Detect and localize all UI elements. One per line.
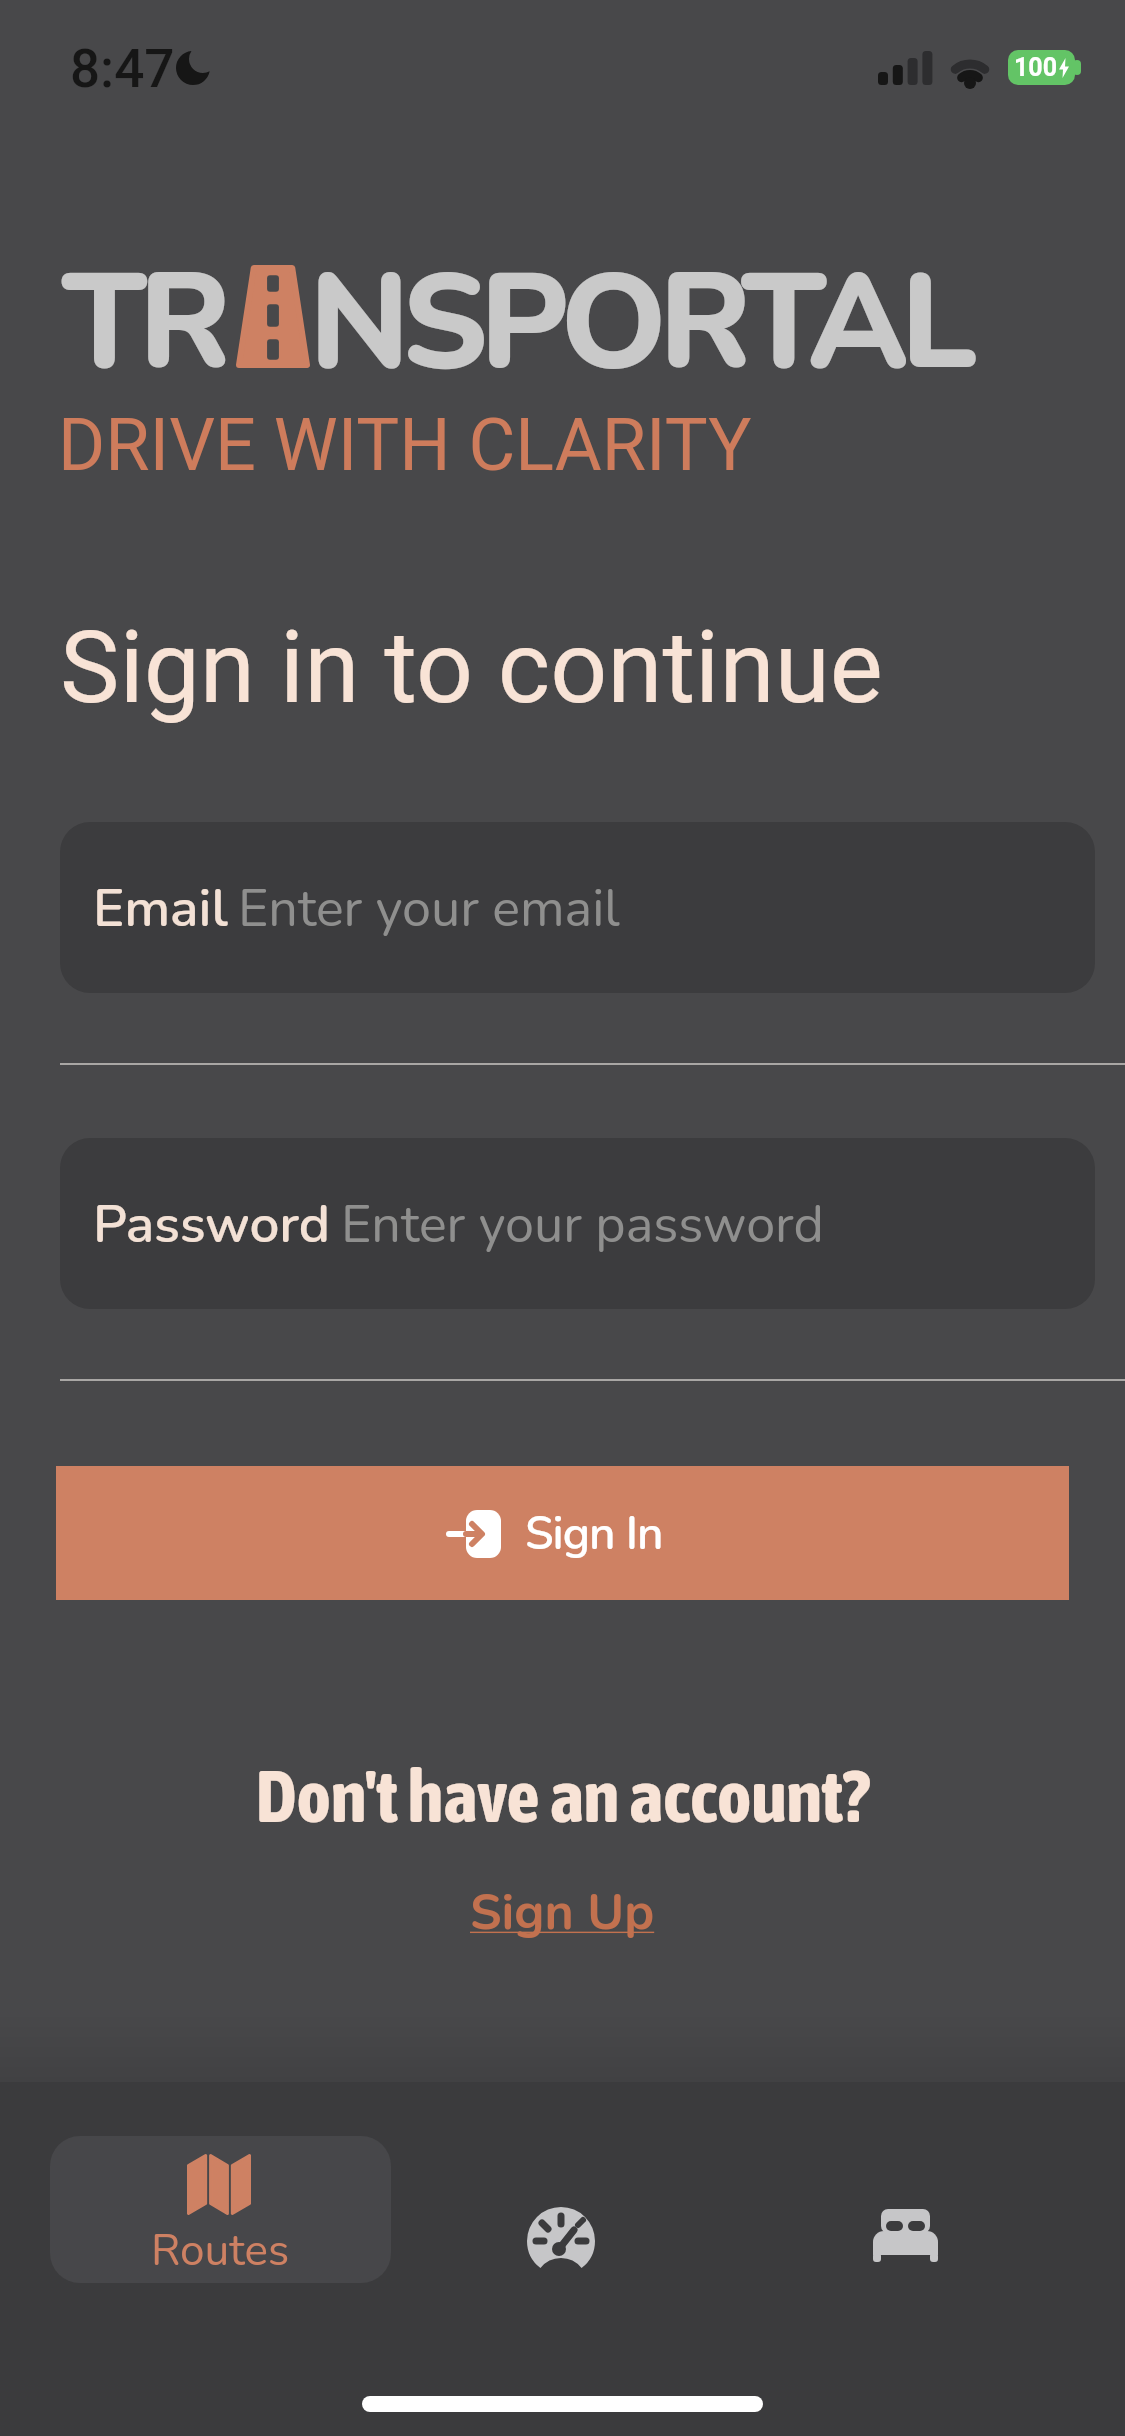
- button[interactable]: Sign In: [56, 1466, 1069, 1600]
- staticText: Routes: [151, 2221, 290, 2281]
- button[interactable]: [840, 2175, 970, 2295]
- staticText: Sign In: [525, 1502, 663, 1565]
- staticText: Email: [93, 872, 228, 944]
- staticText: 100: [1014, 53, 1058, 82]
- button[interactable]: Email: [60, 822, 1095, 993]
- button[interactable]: [496, 2180, 626, 2300]
- staticText: Sign in to continue: [60, 609, 883, 726]
- staticText: 8:47: [70, 38, 175, 100]
- staticText: Enter your password: [341, 1189, 824, 1260]
- button[interactable]: Sign Up: [470, 1878, 655, 1946]
- staticText: DRIVE WITH CLARITY: [58, 403, 752, 487]
- button[interactable]: Password: [60, 1138, 1095, 1309]
- staticText: Enter your email: [238, 873, 620, 944]
- staticText: NSPORTAL: [309, 232, 970, 415]
- staticText: Don't have an account?: [0, 1754, 1125, 1838]
- button[interactable]: Routes: [50, 2136, 391, 2283]
- staticText: TR: [62, 232, 224, 415]
- staticText: Password: [93, 1188, 331, 1260]
